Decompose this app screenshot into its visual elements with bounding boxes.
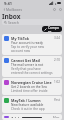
staticText: Your account is ready bbox=[11, 41, 43, 45]
staticText: Get 2 boards on the Sea bbox=[11, 85, 47, 89]
staticText: Norwegian Cruise Line bbox=[11, 80, 52, 85]
staticText: 9:41 bbox=[4, 1, 12, 6]
staticText: Yest bbox=[54, 98, 60, 102]
staticText: 2:10 bbox=[54, 58, 60, 62]
staticText: Compose bbox=[48, 26, 60, 32]
staticText: Mailboxes bbox=[6, 7, 23, 12]
staticText: Mon bbox=[53, 116, 60, 118]
staticText: Cannot Get Mail bbox=[11, 58, 40, 63]
staticText: Tap to verify your new account now bbox=[11, 45, 53, 53]
staticText: The mail server is not responding bbox=[11, 63, 53, 67]
staticText: Limited time offer inside bbox=[11, 89, 48, 93]
button[interactable]: Adobe Creative bbox=[2, 114, 62, 120]
staticText: Adobe Creative bbox=[11, 116, 39, 118]
staticText: Inbox bbox=[2, 12, 21, 19]
button[interactable]: Search bbox=[2, 19, 62, 25]
staticText: Check it out in the app bbox=[11, 107, 45, 111]
button[interactable]: Filter bbox=[52, 7, 56, 11]
button[interactable]: More options bbox=[58, 7, 62, 11]
staticText: MayTab / Lumen bbox=[11, 98, 41, 103]
button[interactable]: My TikTok bbox=[2, 34, 62, 55]
staticText: Search bbox=[8, 20, 19, 25]
button[interactable]: Norwegian Cruise Line bbox=[2, 78, 62, 95]
staticText: New feature available bbox=[11, 103, 44, 107]
staticText: 3:24 bbox=[54, 36, 60, 40]
staticText: 1:02 bbox=[54, 80, 60, 84]
staticText: My TikTok bbox=[11, 36, 30, 41]
button[interactable]: MayTab / Lumen bbox=[2, 96, 62, 113]
button[interactable]: Cannot Get Mail bbox=[2, 56, 62, 77]
staticText: Verify that you have entered the correct… bbox=[11, 67, 53, 75]
button[interactable]: Mailboxes bbox=[2, 7, 24, 12]
button[interactable]: Compose bbox=[42, 26, 62, 32]
